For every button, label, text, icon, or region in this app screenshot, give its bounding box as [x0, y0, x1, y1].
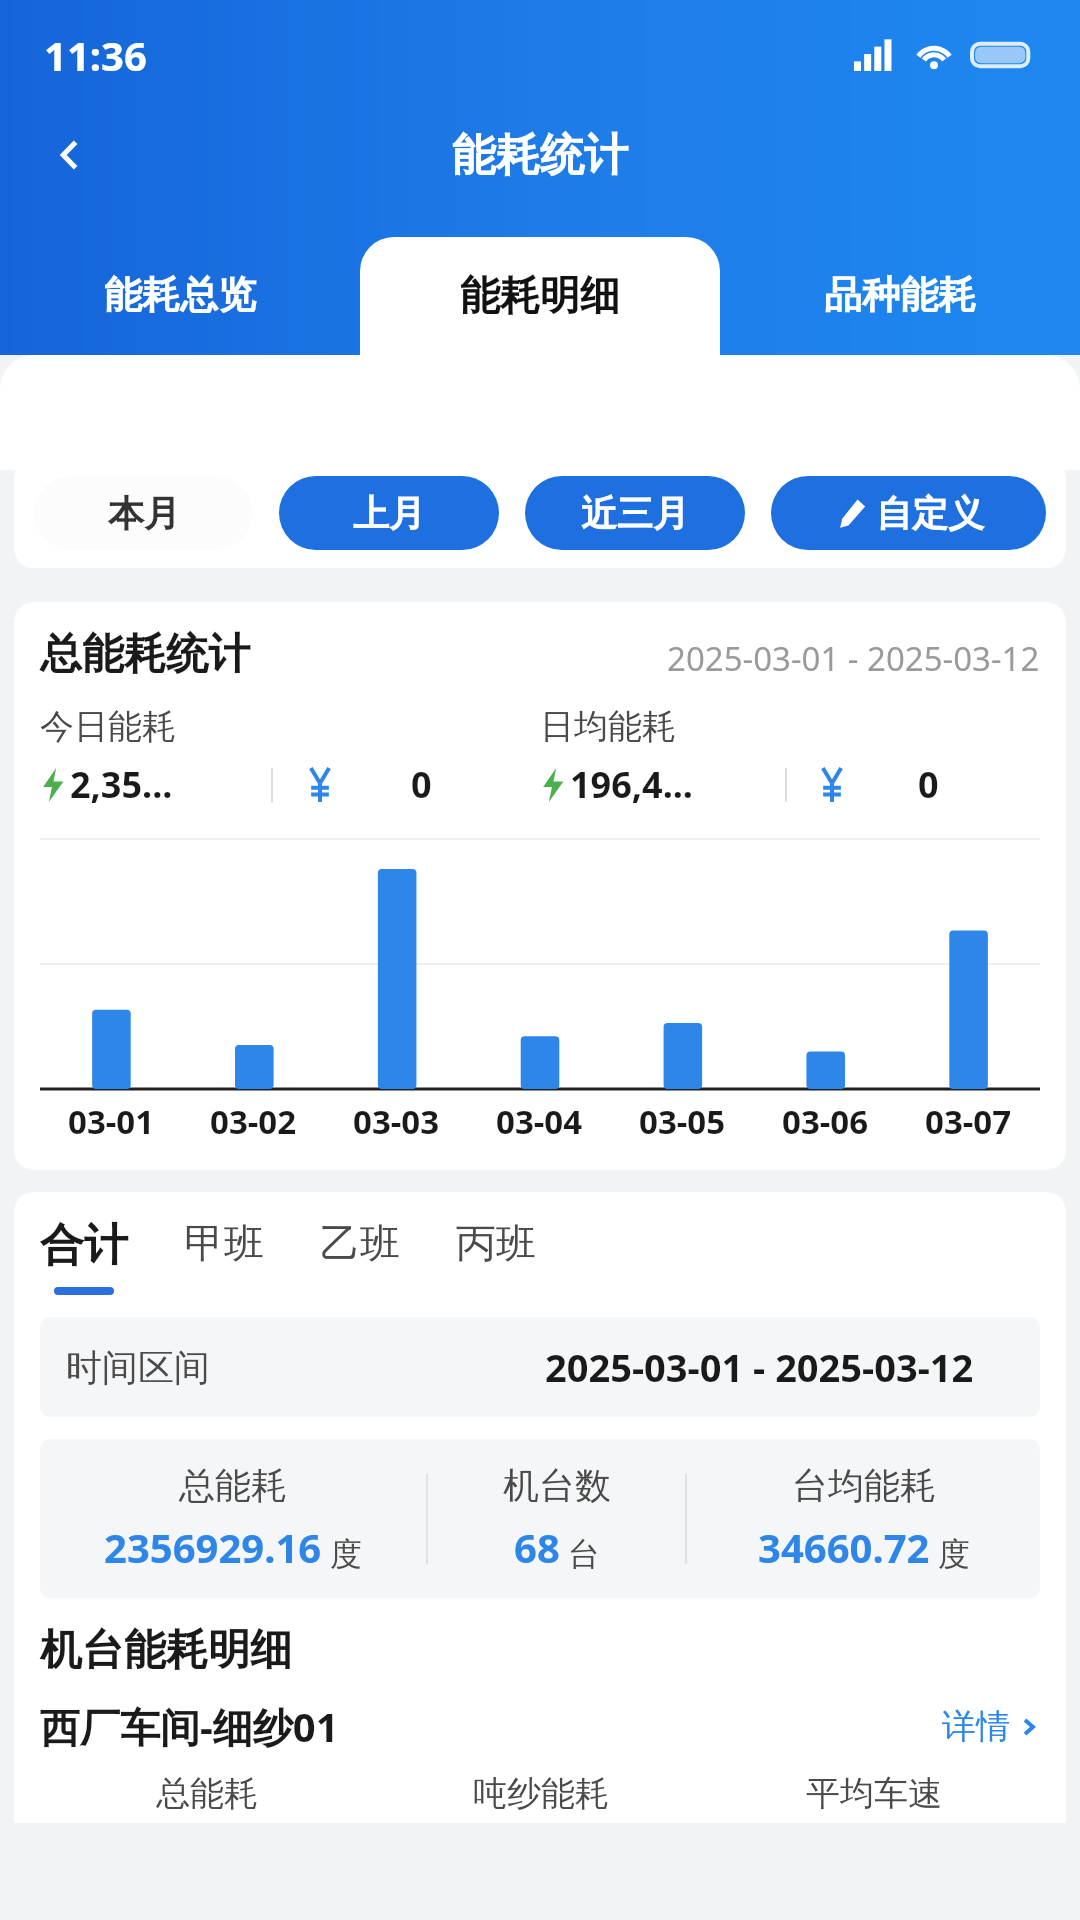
button[interactable]: 品种能耗 [720, 235, 1080, 355]
staticText: 能耗统计 [452, 128, 628, 183]
button[interactable]: 上月 [279, 476, 499, 550]
staticText: 近三月 [581, 491, 689, 536]
staticText: 34660.72 [758, 1520, 930, 1574]
staticText: 上月 [353, 491, 425, 536]
staticText: 能耗明细 [460, 270, 620, 320]
staticText: 03-07 [925, 1099, 1012, 1144]
staticText: 乙班 [320, 1218, 400, 1268]
staticText: 总能耗 [179, 1463, 287, 1508]
staticText: 0 [918, 760, 939, 809]
button[interactable]: 乙班 [320, 1218, 400, 1290]
button[interactable]: 本月 [34, 476, 253, 550]
staticText: 本月 [108, 491, 180, 536]
button[interactable]: 合计 [40, 1218, 128, 1295]
staticText: 丙班 [456, 1218, 536, 1268]
staticText: 度 [330, 1534, 362, 1574]
staticText: 03-05 [639, 1099, 726, 1144]
button[interactable]: 丙班 [456, 1218, 536, 1290]
button[interactable]: Back [30, 115, 110, 195]
staticText: 台均能耗 [792, 1463, 936, 1508]
staticText: 2025-03-01 - 2025-03-12 [667, 636, 1040, 681]
staticText: 总能耗统计 [40, 628, 250, 681]
staticText: 03-01 [68, 1099, 155, 1144]
staticText: 2356929.16 [104, 1520, 322, 1574]
staticText: 吨纱能耗 [473, 1772, 609, 1815]
button[interactable]: 能耗明细 [360, 235, 720, 355]
staticText: 11:36 [44, 28, 147, 82]
staticText: 品种能耗 [824, 271, 976, 319]
button[interactable]: 近三月 [525, 476, 745, 550]
staticText: 2025-03-01 - 2025-03-12 [545, 1341, 974, 1393]
staticText: 台 [568, 1534, 600, 1574]
button[interactable]: 能耗总览 [0, 235, 360, 355]
staticText: 03-02 [210, 1099, 297, 1144]
staticText: 能耗总览 [104, 271, 256, 319]
staticText: 自定义 [876, 491, 984, 536]
staticText: 合计 [40, 1218, 128, 1273]
staticText: 度 [938, 1534, 970, 1574]
staticText: 详情 [942, 1705, 1010, 1748]
staticText: 今日能耗 [40, 705, 176, 748]
staticText: 机台数 [503, 1463, 611, 1508]
button[interactable]: 甲班 [184, 1218, 264, 1290]
staticText: 196,4... [570, 760, 693, 809]
staticText: 日均能耗 [540, 705, 676, 748]
staticText: 03-06 [782, 1099, 869, 1144]
staticText: 机台能耗明细 [40, 1624, 292, 1677]
staticText: 甲班 [184, 1218, 264, 1268]
staticText: 0 [411, 760, 432, 809]
staticText: 平均车速 [806, 1772, 942, 1815]
button[interactable]: 自定义 [771, 476, 1046, 550]
staticText: 总能耗 [156, 1772, 258, 1815]
staticText: 03-03 [353, 1099, 440, 1144]
staticText: 西厂车间-细纱01 [40, 1699, 339, 1754]
staticText: 03-04 [496, 1099, 583, 1144]
staticText: 时间区间 [66, 1345, 210, 1390]
button[interactable]: 西厂车间-细纱01 [40, 1699, 1040, 1754]
staticText: 68 [514, 1520, 560, 1574]
staticText: 2,35... [70, 760, 173, 809]
